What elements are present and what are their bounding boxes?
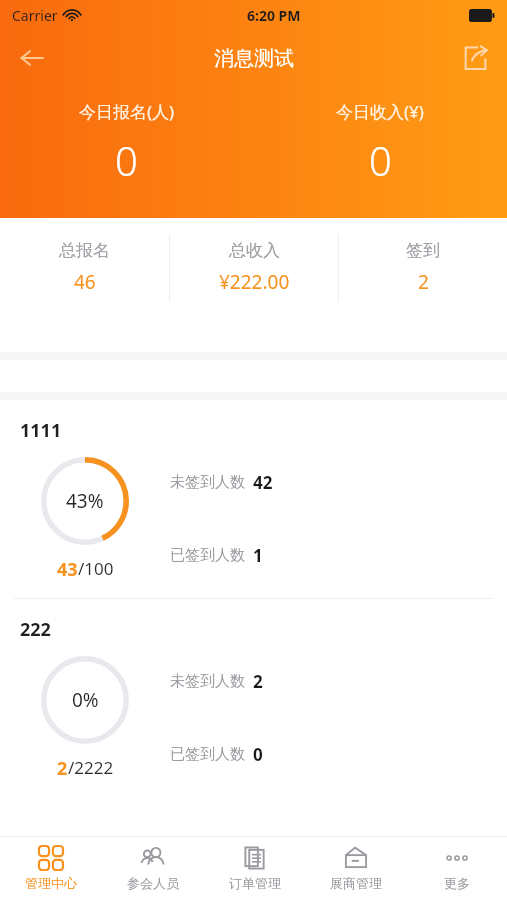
staticText: 展商管理 — [330, 875, 382, 891]
staticText: 已签到人数 — [170, 546, 245, 565]
staticText: 0 — [253, 743, 263, 766]
staticText: 消息测试 — [214, 46, 294, 71]
staticText: 2 — [418, 269, 429, 295]
staticText: ¥222.00 — [219, 269, 290, 295]
staticText: 已签到人数 — [170, 745, 245, 764]
staticText: 43% — [66, 488, 104, 514]
staticText: 6:20 PM — [247, 6, 301, 25]
staticText: 总报名 — [59, 240, 110, 261]
staticText: /100 — [78, 557, 114, 580]
button[interactable]: 总收入 — [170, 218, 338, 295]
staticText: 46 — [74, 269, 96, 295]
staticText: Carrier — [12, 6, 58, 25]
staticText: 参会人员 — [127, 875, 179, 891]
staticText: 1 — [253, 544, 263, 567]
staticText: 2 — [253, 670, 263, 693]
staticText: 更多 — [444, 875, 470, 891]
staticText: 0% — [72, 687, 99, 713]
staticText: 订单管理 — [229, 875, 281, 891]
button[interactable]: 展商管理 — [305, 837, 406, 900]
button[interactable]: 1111 — [0, 400, 507, 598]
button[interactable]: 总报名 — [0, 218, 169, 295]
staticText: 未签到人数 — [170, 672, 245, 691]
staticText: 管理中心 — [25, 875, 77, 891]
staticText: 今日收入(¥) — [336, 100, 424, 123]
button[interactable]: 管理中心 — [0, 837, 102, 900]
button[interactable]: 签到 — [339, 218, 507, 295]
button[interactable]: Back — [8, 34, 56, 82]
staticText: 签到 — [406, 240, 440, 261]
button[interactable]: 订单管理 — [204, 837, 305, 900]
staticText: 0 — [369, 133, 392, 187]
staticText: 今日报名(人) — [79, 100, 175, 123]
staticText: 总收入 — [229, 240, 280, 261]
staticText: 43 — [57, 557, 78, 582]
staticText: 0 — [115, 133, 138, 187]
button[interactable]: Share — [453, 36, 497, 80]
staticText: 2 — [57, 756, 68, 781]
staticText: /2222 — [68, 756, 114, 779]
staticText: 222 — [20, 617, 51, 642]
button[interactable]: 222 — [0, 599, 507, 797]
staticText: 42 — [253, 471, 273, 494]
staticText: 1111 — [20, 418, 62, 443]
button[interactable]: 参会人员 — [102, 837, 204, 900]
button[interactable]: 更多 — [406, 837, 507, 900]
staticText: 未签到人数 — [170, 473, 245, 492]
